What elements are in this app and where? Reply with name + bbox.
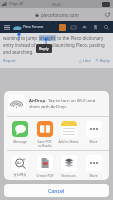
- staticText: △ Like: [79, 58, 91, 63]
- staticText: AirDrop.: [29, 98, 47, 104]
- button[interactable]: More: [82, 154, 105, 177]
- button[interactable]: Search: [103, 24, 110, 31]
- button[interactable]: Alerts: [81, 24, 88, 31]
- button[interactable]: Cancel: [4, 184, 109, 197]
- button[interactable]: Message: [8, 120, 31, 143]
- staticText: Tap to turn on Wi-Fi and Bluetooth to: [47, 98, 105, 104]
- staticText: entry instead of copying/launching Pleco…: [3, 42, 105, 48]
- staticText: Report: [3, 58, 16, 63]
- button[interactable]: Add to Notes: [57, 120, 80, 143]
- button[interactable]: Shortcuts: [57, 154, 80, 177]
- staticText: Create PDF: [36, 173, 54, 177]
- button[interactable]: Inbox: [70, 24, 77, 31]
- staticText: Cancel: [48, 187, 65, 194]
- button[interactable]: More: [82, 120, 105, 143]
- staticText: Pingo 4G: [9, 2, 24, 6]
- button[interactable]: Menu: [3, 23, 11, 31]
- staticText: to the Pleco dictionary: [56, 35, 104, 41]
- staticText: More: [89, 173, 98, 177]
- button[interactable]: Reply: [39, 46, 49, 51]
- staticText: share with AirDrop.: [29, 104, 68, 110]
- staticText: to Books: [38, 143, 52, 147]
- staticText: and searching.: [3, 49, 34, 55]
- staticText: ↰ Reply: [95, 58, 110, 63]
- staticText: Pleco Forums: [23, 25, 44, 29]
- button[interactable]: Aa: [8, 154, 31, 177]
- staticText: 查找网页: [13, 173, 27, 177]
- staticText: Save PDF: [37, 139, 52, 143]
- staticText: 20:42: [52, 2, 61, 7]
- button[interactable]: Create PDF: [33, 154, 56, 177]
- staticText: wanting to jump: [3, 35, 39, 41]
- staticText: More: [89, 139, 98, 143]
- button[interactable]: Bookmark: [92, 24, 99, 31]
- button[interactable]: Save PDF: [33, 120, 56, 147]
- staticText: Add to Notes: [58, 139, 79, 143]
- button[interactable]: Account: [59, 24, 66, 31]
- button[interactable]: AirDrop.: [8, 95, 105, 112]
- staticText: Shortcuts: [61, 173, 76, 177]
- staticText: Aa: [17, 160, 22, 165]
- staticText: Reply: [39, 46, 49, 51]
- staticText: straight: [39, 35, 56, 41]
- staticText: plecoforums.com: [41, 12, 79, 18]
- staticText: Message: [13, 139, 27, 143]
